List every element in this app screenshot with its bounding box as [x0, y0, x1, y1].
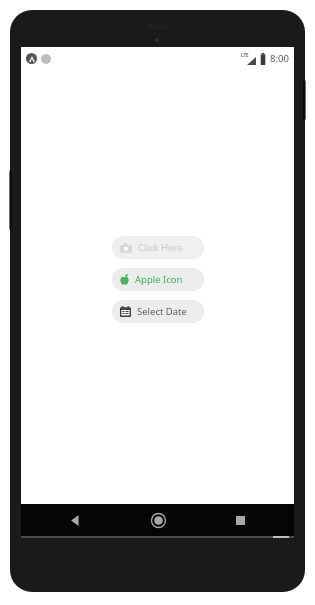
button[interactable]: Home — [130, 504, 186, 536]
staticText: Select Date — [137, 305, 187, 318]
button[interactable]: Apple Icon — [112, 268, 204, 291]
staticText: Click Here — [138, 241, 183, 254]
button[interactable]: Recent apps — [212, 504, 268, 536]
button[interactable]: Click Here — [112, 236, 204, 259]
button[interactable]: Select Date — [112, 300, 204, 323]
staticText: 8:00 — [270, 52, 289, 65]
staticText: LTE — [241, 52, 249, 58]
button[interactable]: Back — [47, 504, 103, 536]
staticText: Apple Icon — [135, 273, 183, 286]
